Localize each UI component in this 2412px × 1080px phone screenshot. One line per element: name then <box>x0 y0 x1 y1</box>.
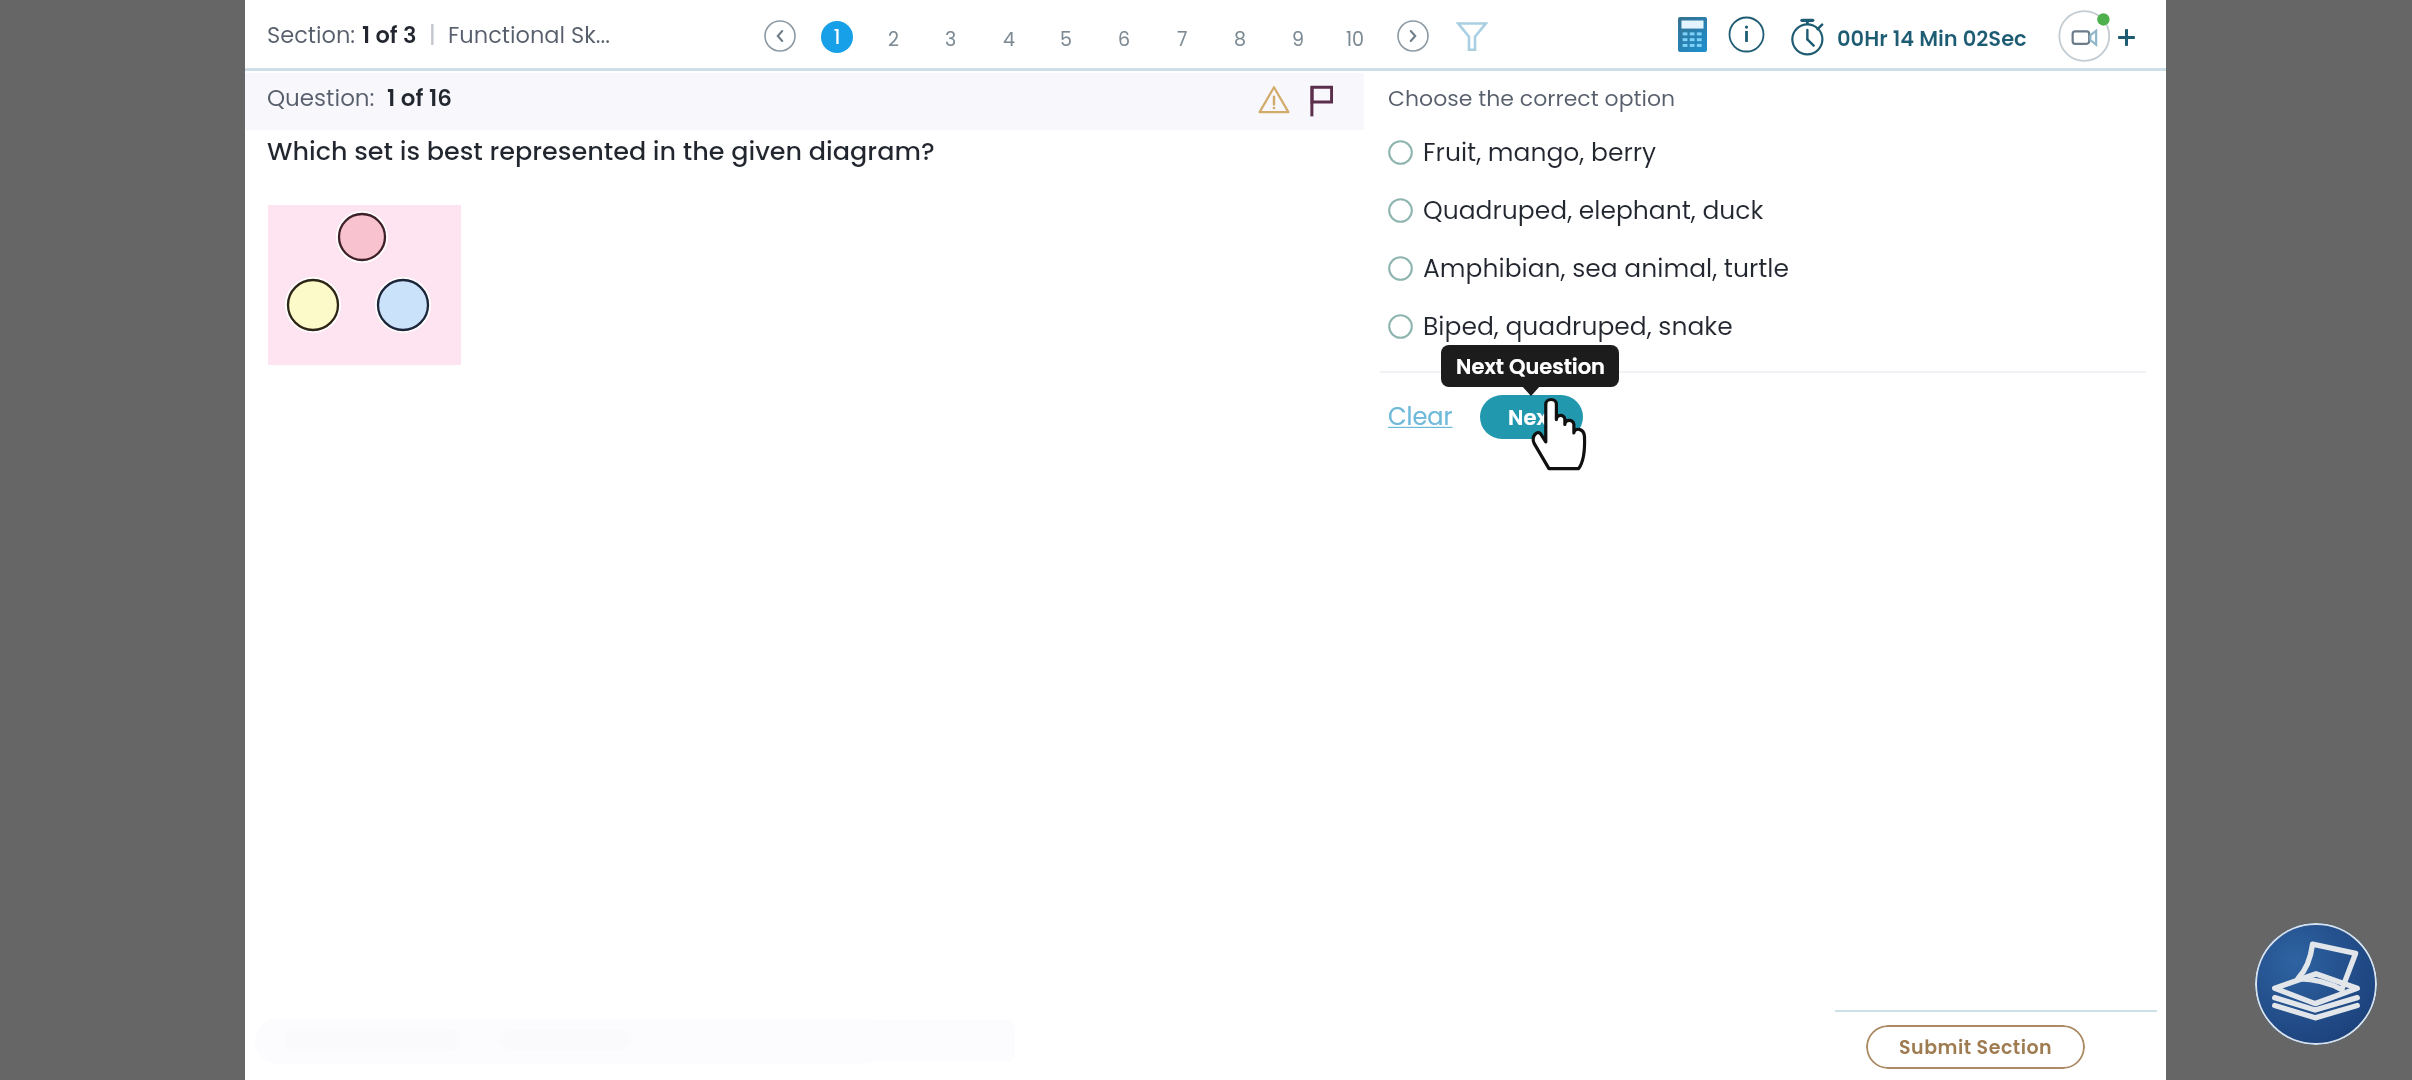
staticText: | <box>417 19 448 50</box>
button[interactable]: Add <box>2117 28 2136 47</box>
button[interactable]: Previous page <box>764 20 796 52</box>
staticText: Amphibian, sea animal, turtle <box>1423 251 1790 286</box>
staticText: Which set is best represented in the giv… <box>267 133 935 169</box>
staticText: Submit Section <box>1899 1034 2053 1061</box>
button[interactable]: Biped, quadruped, snake <box>1388 307 1733 345</box>
button[interactable]: Next page <box>1397 20 1429 52</box>
staticText: Quadruped, elephant, duck <box>1423 193 1764 228</box>
button[interactable]: 1 <box>821 21 853 53</box>
staticText: 1 of 16 <box>387 82 452 114</box>
staticText: Biped, quadruped, snake <box>1423 309 1733 344</box>
staticText: 10 <box>1346 26 1365 53</box>
button[interactable]: 5 <box>1050 23 1082 55</box>
button[interactable]: 7 <box>1166 23 1198 55</box>
staticText: Choose the correct option <box>1388 83 1676 114</box>
staticText: Next <box>1508 403 1556 432</box>
staticText: Next Question <box>1456 352 1605 381</box>
button[interactable]: Open resources <box>2255 923 2377 1045</box>
staticText: 1 of 3 <box>362 19 417 50</box>
button[interactable]: 2 <box>877 23 909 55</box>
button[interactable]: 6 <box>1108 23 1140 55</box>
button[interactable]: Clear <box>1388 400 1453 434</box>
button[interactable]: Filter <box>1457 19 1487 51</box>
staticText: Section: <box>267 19 362 50</box>
staticText: 3 <box>945 26 957 53</box>
staticText: 2 <box>888 26 899 53</box>
staticText: 00Hr 14 Min 02Sec <box>1837 24 2027 53</box>
staticText: 4 <box>1003 26 1015 53</box>
staticText: 9 <box>1292 26 1304 53</box>
button[interactable]: Next <box>1480 395 1583 439</box>
staticText: 1 <box>834 24 841 51</box>
button[interactable]: Fruit, mango, berry <box>1388 133 1657 171</box>
button[interactable]: 8 <box>1224 23 1256 55</box>
staticText: 6 <box>1118 26 1131 53</box>
button[interactable]: 9 <box>1282 23 1314 55</box>
staticText: Clear <box>1388 400 1453 434</box>
button[interactable]: Video proctoring <box>2057 9 2115 67</box>
button[interactable]: Calculator <box>1678 17 1707 52</box>
button[interactable]: Amphibian, sea animal, turtle <box>1388 249 1790 287</box>
staticText: Fruit, mango, berry <box>1423 135 1657 170</box>
staticText: 5 <box>1060 26 1072 53</box>
button[interactable]: Information <box>1728 16 1765 53</box>
staticText: 8 <box>1234 26 1246 53</box>
button[interactable]: 4 <box>993 23 1025 55</box>
button[interactable]: 3 <box>935 23 967 55</box>
staticText: 7 <box>1177 26 1188 53</box>
button[interactable]: Submit Section <box>1866 1025 2085 1069</box>
button[interactable]: 10 <box>1339 23 1371 55</box>
button[interactable]: Report an issue <box>1258 84 1290 116</box>
button[interactable]: Quadruped, elephant, duck <box>1388 191 1764 229</box>
staticText: Question: <box>267 82 387 114</box>
button[interactable]: Flag question <box>1309 85 1333 117</box>
staticText: Functional Sk... <box>448 19 611 50</box>
